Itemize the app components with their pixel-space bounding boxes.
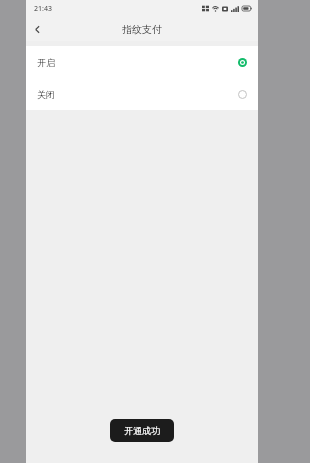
staticText: 关闭 (37, 89, 55, 100)
staticText: 开通成功 (124, 425, 160, 436)
staticText: 开启 (37, 57, 55, 68)
button[interactable]: 开通成功 (110, 419, 174, 442)
button[interactable]: 关闭 (26, 78, 258, 110)
staticText: 指纹支付 (122, 23, 162, 36)
staticText: 21:43 (34, 4, 52, 14)
button[interactable]: 开启 (26, 46, 258, 78)
button[interactable]: Back (26, 18, 48, 40)
